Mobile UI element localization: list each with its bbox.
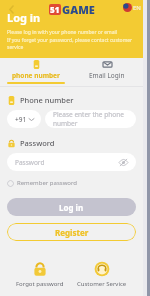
button[interactable]: phone number — [0, 58, 71, 86]
staticText: Password — [15, 158, 119, 167]
button[interactable]: Back — [3, 1, 19, 17]
staticText: 51 — [50, 4, 60, 15]
button[interactable]: Email Login — [71, 58, 143, 86]
staticText: Forgot password — [16, 280, 64, 288]
staticText: Password — [20, 138, 55, 148]
staticText: GAME — [62, 2, 95, 17]
staticText: Email Login — [89, 71, 125, 80]
button[interactable]: +91 — [7, 110, 41, 128]
button[interactable]: Customer Service — [73, 257, 131, 292]
staticText: Customer Service — [77, 280, 127, 288]
staticText: Register — [55, 227, 89, 238]
staticText: +91 — [15, 115, 27, 124]
other: Show password — [119, 158, 128, 167]
staticText: EN — [133, 4, 141, 12]
staticText: Please enter the phone number — [53, 110, 136, 128]
staticText: phone number — [12, 71, 60, 80]
button[interactable]: Password — [7, 153, 136, 171]
staticText: Please log in with your phone number or … — [7, 29, 118, 36]
staticText: Phone number — [20, 95, 74, 105]
staticText: Log in — [59, 202, 84, 213]
staticText: Remember password — [17, 179, 78, 187]
button[interactable]: Language — [123, 3, 141, 12]
button[interactable]: Please enter the phone number — [45, 110, 136, 128]
button[interactable]: Remember password — [7, 178, 78, 188]
staticText: Log in — [7, 10, 41, 25]
button[interactable]: Register — [7, 223, 136, 241]
staticText: If you forget your password, please cont… — [7, 37, 143, 51]
button[interactable]: Log in — [7, 198, 136, 216]
button[interactable]: Forgot password — [12, 257, 68, 292]
